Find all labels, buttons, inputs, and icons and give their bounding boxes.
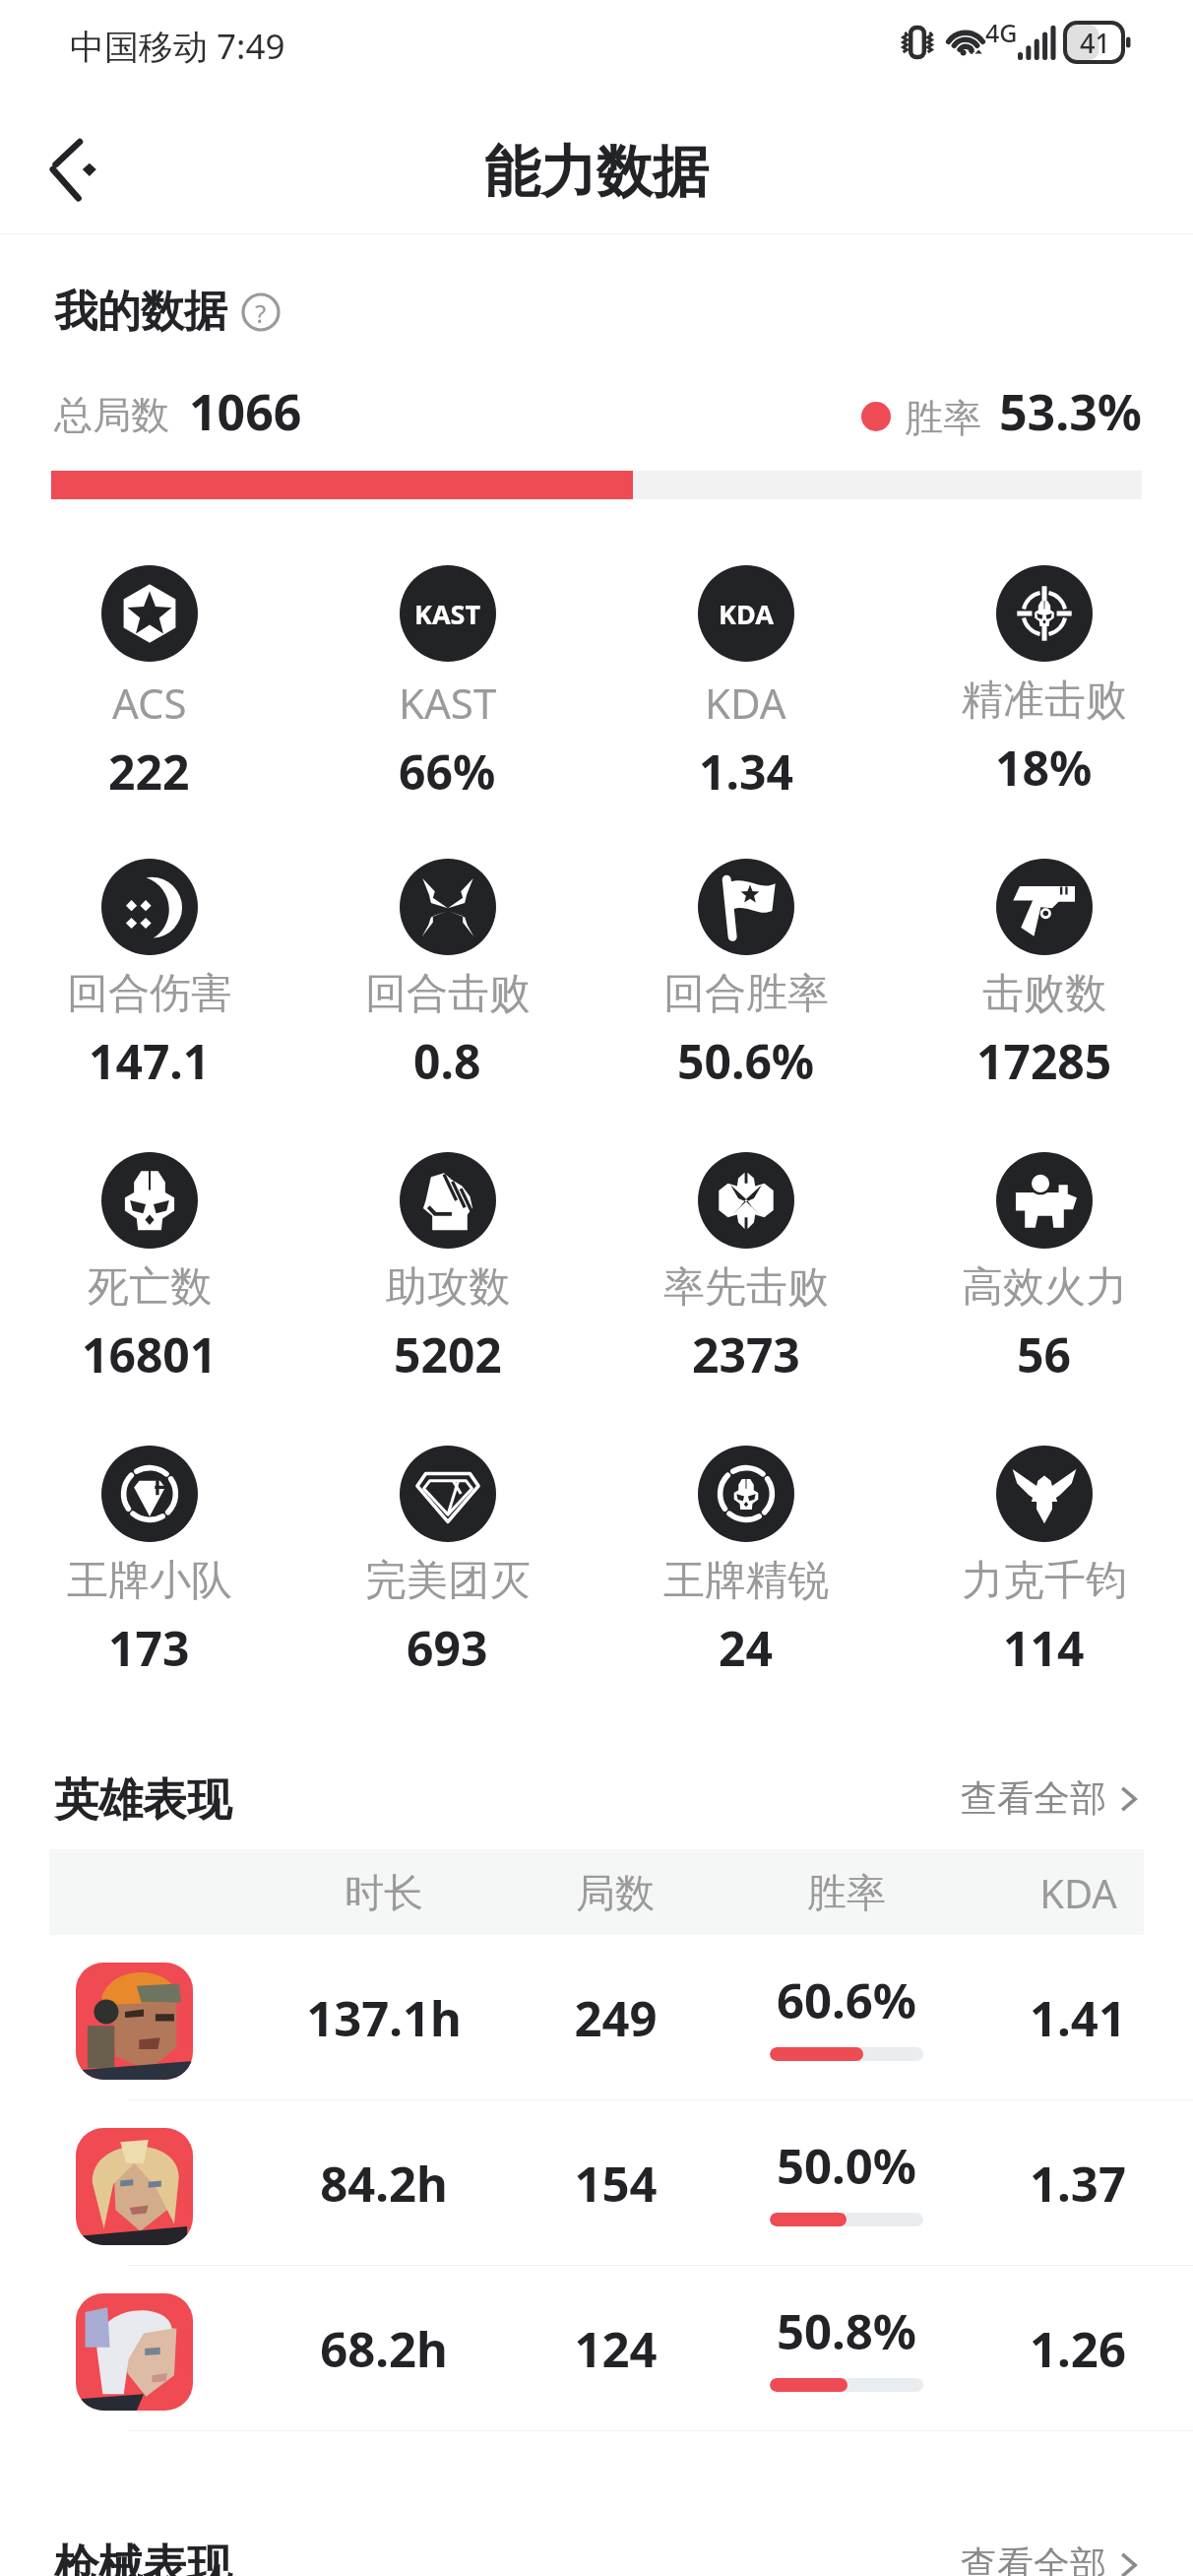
- staticText: 24: [719, 1616, 773, 1680]
- staticText: 英雄表现: [54, 1772, 231, 1829]
- staticText: 56: [1017, 1322, 1071, 1386]
- button[interactable]: 返回: [26, 122, 120, 217]
- staticText: 66%: [399, 740, 496, 804]
- staticText: 1.26: [1030, 2316, 1126, 2382]
- staticText: 50.6%: [677, 1029, 815, 1093]
- staticText: 18%: [995, 736, 1093, 800]
- staticText: 总局数: [54, 391, 169, 439]
- staticText: KDA: [705, 675, 786, 731]
- staticText: 时长: [345, 1868, 423, 1917]
- staticText: ACS: [112, 675, 187, 731]
- staticText: 王牌小队: [67, 1555, 232, 1607]
- staticText: 50.8%: [777, 2298, 917, 2364]
- staticText: 68.2h: [320, 2316, 448, 2382]
- staticText: 回合击败: [365, 968, 531, 1020]
- staticText: 回合伤害: [67, 968, 232, 1020]
- staticText: 114: [1003, 1616, 1085, 1680]
- staticText: 84.2h: [320, 2151, 448, 2217]
- staticText: 154: [574, 2151, 658, 2217]
- staticText: KAST: [399, 675, 497, 731]
- button[interactable]: 查看全部: [961, 1775, 1146, 1822]
- staticText: 17285: [976, 1029, 1112, 1093]
- staticText: 局数: [576, 1868, 655, 1917]
- staticText: 查看全部: [961, 1775, 1106, 1822]
- staticText: 0.8: [413, 1029, 481, 1093]
- staticText: 173: [108, 1616, 190, 1680]
- staticText: 击败数: [982, 968, 1106, 1020]
- button[interactable]: KDA: [596, 565, 895, 804]
- button[interactable]: 死亡数: [0, 1152, 298, 1386]
- staticText: 死亡数: [88, 1261, 212, 1314]
- button[interactable]: KAST: [298, 565, 596, 804]
- staticText: 60.6%: [777, 1967, 917, 2033]
- staticText: 41: [1080, 25, 1110, 61]
- button[interactable]: 率先击败: [596, 1152, 895, 1386]
- staticText: 4G: [985, 16, 1018, 49]
- button[interactable]: 回合胜率: [596, 859, 895, 1093]
- button[interactable]: 精准击败: [895, 565, 1193, 800]
- staticText: 完美团灭: [365, 1555, 531, 1607]
- staticText: KAST: [414, 596, 481, 632]
- staticText: 查看全部: [961, 2542, 1106, 2576]
- staticText: 50.0%: [777, 2133, 917, 2199]
- button[interactable]: 击败数: [895, 859, 1193, 1093]
- button[interactable]: 助攻数: [298, 1152, 596, 1386]
- staticText: ?: [255, 295, 267, 330]
- button[interactable]: 高效火力: [895, 1152, 1193, 1386]
- button[interactable]: 回合击败: [298, 859, 596, 1093]
- staticText: 222: [108, 740, 190, 804]
- button[interactable]: 137.1h: [0, 1935, 1193, 2100]
- staticText: 53.3%: [999, 378, 1142, 445]
- staticText: KDA: [1039, 1866, 1117, 1919]
- button[interactable]: 查看全部: [961, 2542, 1146, 2576]
- staticText: 2373: [692, 1322, 800, 1386]
- staticText: 137.1h: [306, 1985, 462, 2051]
- staticText: 胜率: [807, 1868, 886, 1917]
- staticText: 249: [574, 1985, 658, 2051]
- button[interactable]: 68.2h: [0, 2266, 1193, 2431]
- staticText: 1.41: [1030, 1985, 1126, 2051]
- staticText: 1066: [189, 378, 302, 445]
- staticText: 精准击败: [962, 675, 1127, 727]
- staticText: 147.1: [89, 1029, 211, 1093]
- button[interactable]: 力克千钧: [895, 1446, 1193, 1680]
- staticText: 5202: [394, 1322, 502, 1386]
- staticText: 我的数据: [54, 285, 227, 339]
- staticText: KDA: [719, 596, 774, 632]
- staticText: 胜率: [905, 394, 981, 442]
- button[interactable]: 王牌精锐: [596, 1446, 895, 1680]
- staticText: 能力数据: [484, 137, 709, 208]
- button[interactable]: 84.2h: [0, 2100, 1193, 2266]
- button[interactable]: 我的数据: [54, 285, 281, 339]
- staticText: 王牌精锐: [663, 1555, 829, 1607]
- staticText: 助攻数: [386, 1261, 510, 1314]
- staticText: 1.37: [1030, 2151, 1126, 2217]
- staticText: 力克千钧: [962, 1555, 1127, 1607]
- staticText: 枪械表现: [54, 2539, 231, 2576]
- button[interactable]: 回合伤害: [0, 859, 298, 1093]
- staticText: 693: [407, 1616, 488, 1680]
- staticText: 124: [574, 2316, 658, 2382]
- staticText: 回合胜率: [663, 968, 829, 1020]
- button[interactable]: 完美团灭: [298, 1446, 596, 1680]
- staticText: 16801: [82, 1322, 218, 1386]
- staticText: 高效火力: [962, 1261, 1127, 1314]
- staticText: 1.34: [699, 740, 793, 804]
- staticText: 率先击败: [663, 1261, 829, 1314]
- staticText: 中国移动 7:49: [70, 23, 285, 70]
- button[interactable]: 王牌小队: [0, 1446, 298, 1680]
- button[interactable]: ACS: [0, 565, 298, 804]
